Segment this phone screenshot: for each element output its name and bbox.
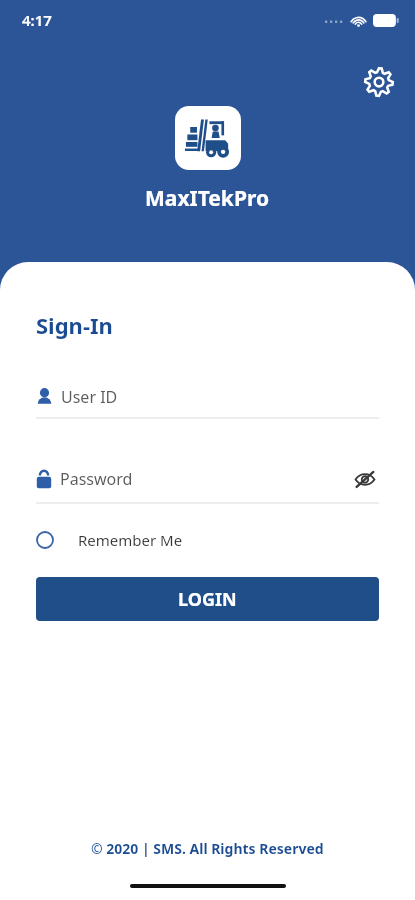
staticText: Sign-In	[36, 310, 113, 340]
button[interactable]: Password	[36, 465, 379, 504]
staticText: User ID	[61, 386, 118, 408]
staticText: 4:17	[22, 10, 52, 30]
staticText: Password	[60, 468, 133, 490]
staticText: MaxITekPro	[145, 184, 270, 213]
staticText: LOGIN	[178, 587, 237, 612]
button[interactable]: Settings	[361, 64, 397, 100]
staticText: © 2020 | SMS. All Rights Reserved	[91, 839, 324, 858]
staticText: Remember Me	[78, 530, 183, 550]
button[interactable]: LOGIN	[36, 577, 379, 621]
button[interactable]: Remember Me	[36, 530, 379, 550]
button[interactable]: User ID	[36, 386, 379, 419]
button[interactable]: Show password	[351, 465, 379, 493]
